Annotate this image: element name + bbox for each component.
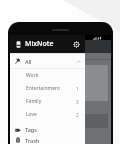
staticText: Entertainment <box>26 85 60 92</box>
staticText: 1 <box>76 86 79 92</box>
button[interactable]: Settings <box>72 40 81 49</box>
button[interactable]: Tags <box>10 123 85 136</box>
button[interactable]: Family <box>10 95 85 108</box>
button[interactable]: Love <box>10 108 85 121</box>
staticText: 3 <box>76 99 79 105</box>
staticText: MixNote <box>25 39 54 49</box>
staticText: Work <box>26 72 39 79</box>
staticText: Trash <box>25 137 40 144</box>
staticText: Family <box>26 98 42 105</box>
staticText: All <box>25 58 32 65</box>
button[interactable]: All <box>10 54 85 68</box>
button[interactable]: MixNote <box>10 35 85 53</box>
button[interactable]: Entertainment <box>10 82 85 95</box>
staticText: Love <box>26 111 37 118</box>
staticText: 2 <box>76 112 79 118</box>
button[interactable]: Trash <box>10 136 85 144</box>
staticText: Tags <box>25 126 37 133</box>
button[interactable]: Work <box>10 69 85 82</box>
